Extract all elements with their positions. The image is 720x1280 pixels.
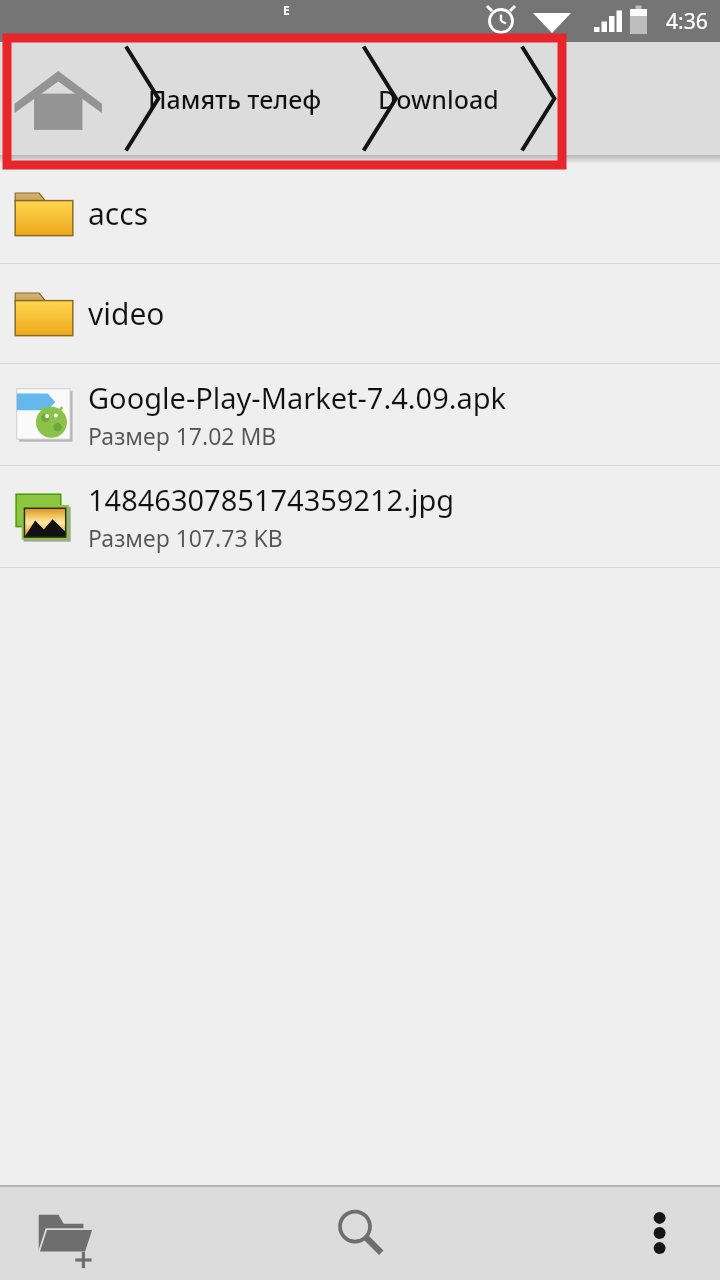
staticText: Размер 17.02 MB (88, 420, 277, 451)
staticText: Память телеф (148, 82, 322, 116)
staticText: 1484630785174359212.jpg (88, 480, 455, 519)
button[interactable]: Home (0, 42, 112, 155)
button[interactable]: More options (614, 1185, 704, 1280)
button[interactable]: Download (378, 42, 528, 155)
staticText: Размер 107.73 KB (88, 522, 283, 553)
button[interactable]: Search (310, 1185, 410, 1280)
button[interactable]: accs (0, 164, 720, 263)
staticText: accs (88, 193, 148, 234)
button[interactable]: New folder (16, 1185, 116, 1280)
staticText: 4:36 (666, 7, 708, 36)
staticText: Google-Play-Market-7.4.09.apk (88, 378, 507, 417)
button[interactable]: Память телеф (148, 42, 338, 155)
button[interactable]: 1484630785174359212.jpg (0, 466, 720, 567)
staticText: video (88, 293, 165, 334)
button[interactable]: Google-Play-Market-7.4.09.apk (0, 364, 720, 465)
button[interactable]: video (0, 264, 720, 363)
staticText: Download (378, 82, 499, 116)
staticText: E (283, 2, 290, 18)
